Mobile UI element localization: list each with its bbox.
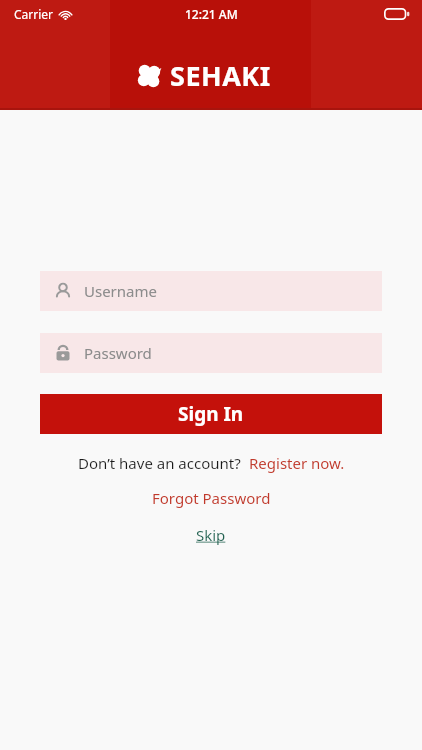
button[interactable]: Register now. <box>249 453 345 473</box>
staticText: Username <box>84 281 157 301</box>
button[interactable]: Sign In <box>40 394 382 434</box>
staticText: Forgot Password <box>152 488 271 508</box>
staticText: Sign In <box>178 401 244 427</box>
staticText: Don’t have an account? <box>78 453 241 473</box>
other: Password <box>54 344 72 362</box>
button[interactable]: Username <box>40 271 382 311</box>
staticText: Register now. <box>249 453 345 473</box>
staticText: Carrier <box>14 6 54 22</box>
other: Username <box>54 282 72 300</box>
staticText: SEHAKI <box>170 57 271 94</box>
staticText: 12:21 AM <box>185 6 238 22</box>
button[interactable]: Password <box>40 333 382 373</box>
staticText: Skip <box>196 525 226 545</box>
button[interactable]: Skip <box>196 525 226 545</box>
staticText: Password <box>84 343 152 363</box>
button[interactable]: Forgot Password <box>152 488 271 508</box>
